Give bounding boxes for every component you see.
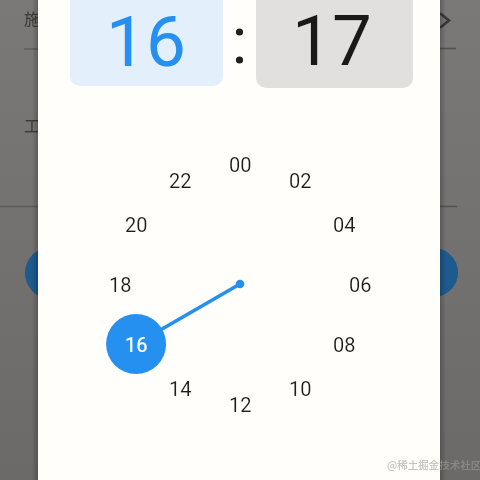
staticText: 20 [125, 213, 148, 236]
staticText: 02 [289, 169, 312, 192]
staticText: 18 [109, 273, 132, 296]
button[interactable]: 14 [156, 370, 204, 406]
staticText: 04 [333, 213, 356, 236]
staticText: 17 [292, 0, 372, 82]
staticText: 06 [349, 273, 372, 296]
staticText: 16 [125, 333, 148, 356]
staticText: 12 [229, 393, 252, 416]
button[interactable]: 16 [106, 314, 166, 374]
button[interactable]: 00 [216, 146, 264, 182]
button[interactable]: 12 [216, 386, 264, 422]
button[interactable]: 04 [320, 206, 368, 242]
staticText: 施 [24, 6, 41, 29]
staticText: 14 [169, 377, 192, 400]
staticText: 22 [169, 169, 192, 192]
button[interactable]: 20 [112, 206, 160, 242]
button[interactable] [256, 0, 413, 88]
staticText: 00 [229, 153, 252, 176]
button[interactable]: 06 [336, 266, 384, 302]
staticText: 08 [333, 333, 356, 356]
button[interactable]: 02 [276, 162, 324, 198]
staticText: 工 [24, 113, 41, 136]
staticText: @稀土掘金技术社区 [387, 457, 480, 472]
button[interactable]: 08 [320, 326, 368, 362]
staticText: 16 [125, 333, 148, 356]
staticText: 16 [106, 0, 186, 83]
button[interactable]: 22 [156, 162, 204, 198]
button[interactable]: 18 [96, 266, 144, 302]
button[interactable]: 10 [276, 370, 324, 406]
button[interactable] [70, 0, 223, 86]
button[interactable]: 16 [112, 326, 160, 362]
staticText: 10 [289, 377, 312, 400]
